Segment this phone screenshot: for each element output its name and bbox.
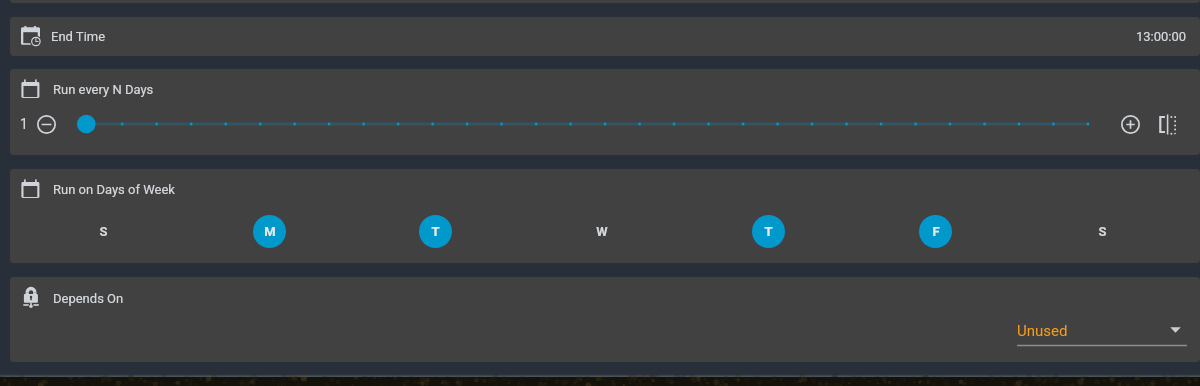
staticText: T xyxy=(764,224,773,239)
staticText: Unused xyxy=(1017,322,1068,340)
staticText: S xyxy=(1098,224,1107,239)
button[interactable]: S xyxy=(1086,215,1119,248)
staticText: 1 xyxy=(20,116,28,132)
button[interactable]: End Time xyxy=(10,17,1200,56)
button[interactable]: F xyxy=(919,215,952,248)
button[interactable]: S xyxy=(87,215,120,248)
button[interactable]: Increase xyxy=(1117,111,1143,137)
staticText: 13:00:00 xyxy=(1136,29,1187,44)
staticText: S xyxy=(99,224,108,239)
button[interactable]: W xyxy=(585,215,618,248)
staticText: T xyxy=(431,224,440,239)
button[interactable]: T xyxy=(752,215,785,248)
staticText: Run every N Days xyxy=(53,82,154,97)
button[interactable]: M xyxy=(253,215,286,248)
button[interactable]: Enter value xyxy=(1154,111,1180,137)
staticText: Depends On xyxy=(53,291,124,306)
button[interactable]: Unused xyxy=(1017,319,1187,346)
button[interactable]: T xyxy=(419,215,452,248)
staticText: M xyxy=(264,224,276,239)
button[interactable]: Decrease xyxy=(33,111,59,137)
button[interactable] xyxy=(77,112,1089,136)
staticText: Run on Days of Week xyxy=(53,182,175,197)
staticText: W xyxy=(596,224,608,239)
staticText: End Time xyxy=(51,29,106,44)
staticText: F xyxy=(932,224,940,239)
